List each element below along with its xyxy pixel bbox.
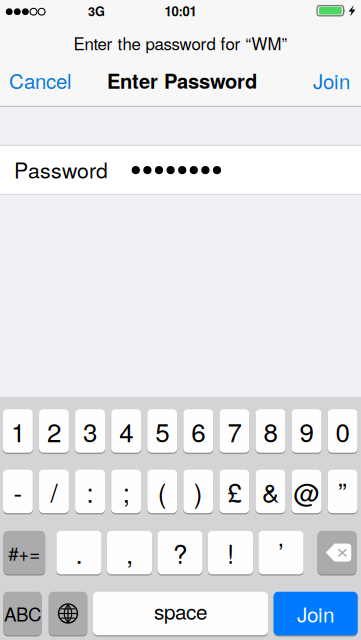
staticText: #+=: [8, 539, 40, 566]
button[interactable]: 1: [3, 408, 33, 454]
staticText: ’: [278, 533, 284, 570]
button[interactable]: /: [39, 468, 69, 514]
staticText: !: [227, 534, 234, 571]
button[interactable]: 0: [328, 408, 358, 454]
staticText: 3G: [88, 2, 105, 20]
button[interactable]: 7: [219, 408, 249, 454]
button[interactable]: Join: [274, 590, 358, 636]
button[interactable]: 8: [255, 408, 285, 454]
staticText: /: [50, 473, 57, 510]
button[interactable]: ;: [111, 468, 141, 514]
button[interactable]: 6: [183, 408, 213, 454]
staticText: 8: [263, 412, 277, 450]
staticText: Enter the password for “WM”: [73, 31, 287, 55]
button[interactable]: 2: [39, 408, 69, 454]
staticText: 0: [336, 412, 350, 450]
staticText: :: [87, 473, 94, 510]
button[interactable]: #+=: [3, 530, 45, 575]
button[interactable]: £: [219, 468, 249, 514]
staticText: Cancel: [9, 66, 72, 95]
button[interactable]: ”: [328, 468, 358, 514]
button[interactable]: space: [93, 590, 268, 636]
button[interactable]: Password: [0, 145, 361, 194]
staticText: 4: [119, 412, 133, 450]
staticText: ;: [123, 473, 130, 510]
staticText: 3: [83, 412, 97, 450]
button[interactable]: Cancel: [1, 58, 87, 102]
button[interactable]: ABC: [3, 590, 42, 636]
staticText: 1: [11, 412, 25, 450]
button[interactable]: ?: [157, 530, 203, 575]
button[interactable]: .: [56, 530, 102, 575]
staticText: Password: [14, 154, 108, 184]
staticText: (: [158, 473, 167, 510]
staticText: 7: [227, 412, 241, 450]
staticText: 2: [47, 412, 61, 450]
staticText: 10:01: [164, 2, 196, 20]
button[interactable]: ,: [107, 530, 152, 575]
button[interactable]: Next keyboard: [49, 590, 87, 636]
staticText: 5: [155, 412, 169, 450]
staticText: -: [13, 473, 22, 510]
staticText: ?: [173, 534, 187, 571]
staticText: 6: [191, 412, 205, 450]
staticText: 9: [299, 412, 313, 450]
button[interactable]: (: [147, 468, 177, 514]
button[interactable]: ): [183, 468, 213, 514]
button[interactable]: 3: [75, 408, 105, 454]
button[interactable]: !: [208, 530, 253, 575]
button[interactable]: Join: [298, 58, 361, 102]
button[interactable]: 9: [292, 408, 321, 454]
staticText: ): [194, 473, 203, 510]
staticText: £: [227, 473, 241, 510]
staticText: space: [154, 596, 207, 626]
staticText: ABC: [4, 600, 41, 627]
button[interactable]: 5: [147, 408, 177, 454]
button[interactable]: Delete: [317, 530, 356, 575]
staticText: .: [75, 534, 82, 571]
button[interactable]: -: [3, 468, 33, 514]
staticText: ,: [126, 534, 133, 571]
button[interactable]: ’: [258, 530, 304, 575]
button[interactable]: 4: [111, 408, 141, 454]
staticText: Join: [313, 66, 350, 95]
staticText: ”: [338, 472, 347, 509]
button[interactable]: :: [75, 468, 105, 514]
staticText: &: [262, 473, 279, 510]
button[interactable]: @: [292, 468, 321, 514]
button[interactable]: &: [255, 468, 285, 514]
staticText: Enter Password: [107, 66, 257, 95]
staticText: Join: [297, 599, 334, 628]
staticText: @: [293, 473, 319, 510]
